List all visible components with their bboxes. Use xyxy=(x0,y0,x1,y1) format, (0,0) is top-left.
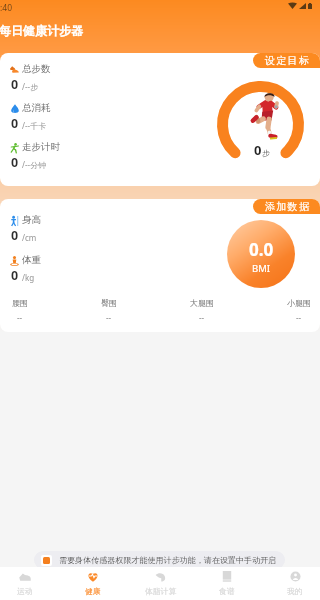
staticText: -- xyxy=(296,312,302,323)
staticText: 0 xyxy=(11,227,19,244)
staticText: -- xyxy=(106,312,112,323)
staticText: 腰围 xyxy=(12,298,28,308)
button[interactable]: 体脂计算 xyxy=(135,570,187,600)
button[interactable]: 0.0 xyxy=(227,220,295,288)
button[interactable]: 总步数 xyxy=(9,63,51,92)
staticText: 臀围 xyxy=(101,298,117,308)
staticText: 健康 xyxy=(85,586,101,596)
staticText: /--步 xyxy=(22,81,39,92)
staticText: 小腿围 xyxy=(287,298,311,308)
staticText: /--分钟 xyxy=(22,159,47,170)
staticText: 0 xyxy=(11,154,19,171)
staticText: 需要身体传感器权限才能使用计步功能，请在设置中手动开启 xyxy=(59,555,277,565)
staticText: 食谱 xyxy=(219,586,235,596)
button[interactable]: 我的 xyxy=(269,570,320,600)
button[interactable]: 走步计时 xyxy=(9,141,60,170)
button[interactable]: 添加数据 xyxy=(253,199,320,214)
staticText: 身高 xyxy=(22,214,41,226)
button[interactable]: 臀围 xyxy=(101,298,117,323)
staticText: /cm xyxy=(22,232,37,243)
staticText: 体脂计算 xyxy=(145,586,177,596)
staticText: BMI xyxy=(252,262,271,275)
staticText: 体重 xyxy=(22,254,41,266)
button[interactable]: 大腿围 xyxy=(190,298,214,323)
staticText: 0 xyxy=(11,267,19,284)
button[interactable]: 需要身体传感器权限才能使用计步功能，请在设置中手动开启 xyxy=(34,551,285,569)
staticText: 0.0 xyxy=(249,238,274,261)
staticText: 0 xyxy=(11,115,19,132)
button[interactable]: 身高 xyxy=(9,214,41,243)
staticText: 0 xyxy=(11,76,19,93)
staticText: 添加数据 xyxy=(265,200,311,213)
button[interactable]: 体重 xyxy=(9,254,41,283)
staticText: 步 xyxy=(262,148,270,158)
button[interactable]: 健康 xyxy=(67,570,119,600)
staticText: -- xyxy=(199,312,205,323)
button[interactable]: 食谱 xyxy=(201,570,253,600)
staticText: :40 xyxy=(0,2,13,14)
button[interactable]: 小腿围 xyxy=(287,298,311,323)
staticText: 总步数 xyxy=(22,63,51,75)
button[interactable]: 设定目标 xyxy=(253,53,320,68)
staticText: 每日健康计步器 xyxy=(0,23,83,38)
staticText: 0 xyxy=(254,141,262,159)
staticText: -- xyxy=(17,312,23,323)
staticText: 大腿围 xyxy=(190,298,214,308)
button[interactable]: 腰围 xyxy=(12,298,28,323)
staticText: /kg xyxy=(22,272,35,283)
staticText: 总消耗 xyxy=(22,102,51,114)
staticText: /--千卡 xyxy=(22,120,47,131)
button[interactable]: 运动 xyxy=(0,570,51,600)
staticText: 我的 xyxy=(287,586,303,596)
staticText: 设定目标 xyxy=(265,54,311,67)
button[interactable]: 总消耗 xyxy=(9,102,51,131)
staticText: 运动 xyxy=(17,586,33,596)
staticText: 走步计时 xyxy=(22,141,60,153)
